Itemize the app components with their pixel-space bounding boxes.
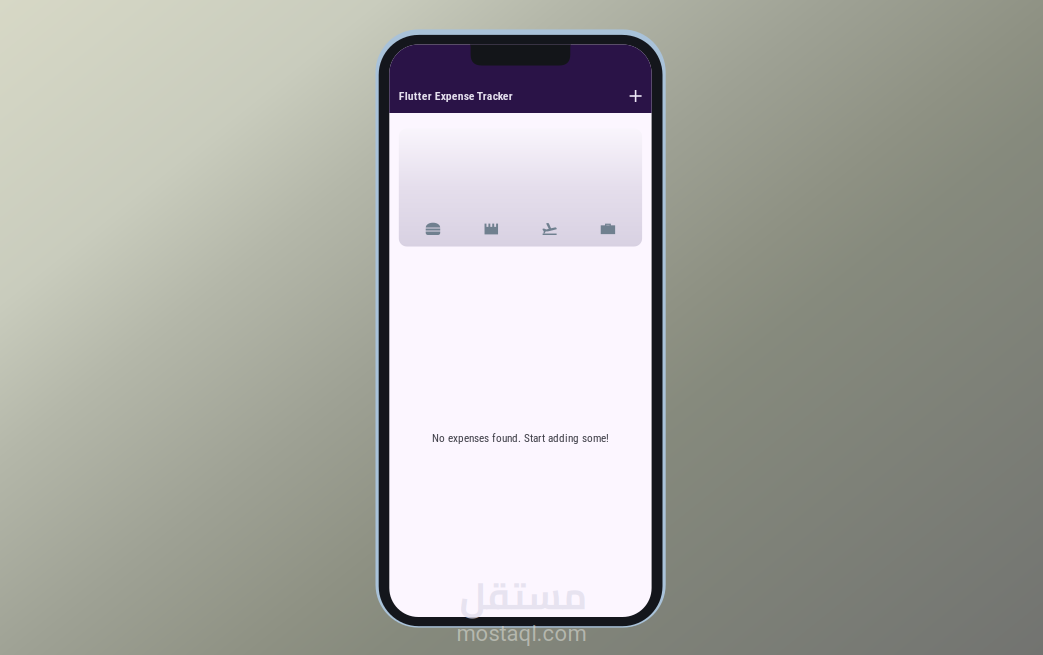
staticText: Flutter Expense Tracker bbox=[399, 89, 513, 103]
staticText: mostaql.com bbox=[456, 620, 586, 646]
button[interactable]: Add expense bbox=[625, 85, 647, 107]
staticText: No expenses found. Start adding some! bbox=[432, 431, 609, 445]
staticText: مستقل bbox=[459, 560, 587, 630]
